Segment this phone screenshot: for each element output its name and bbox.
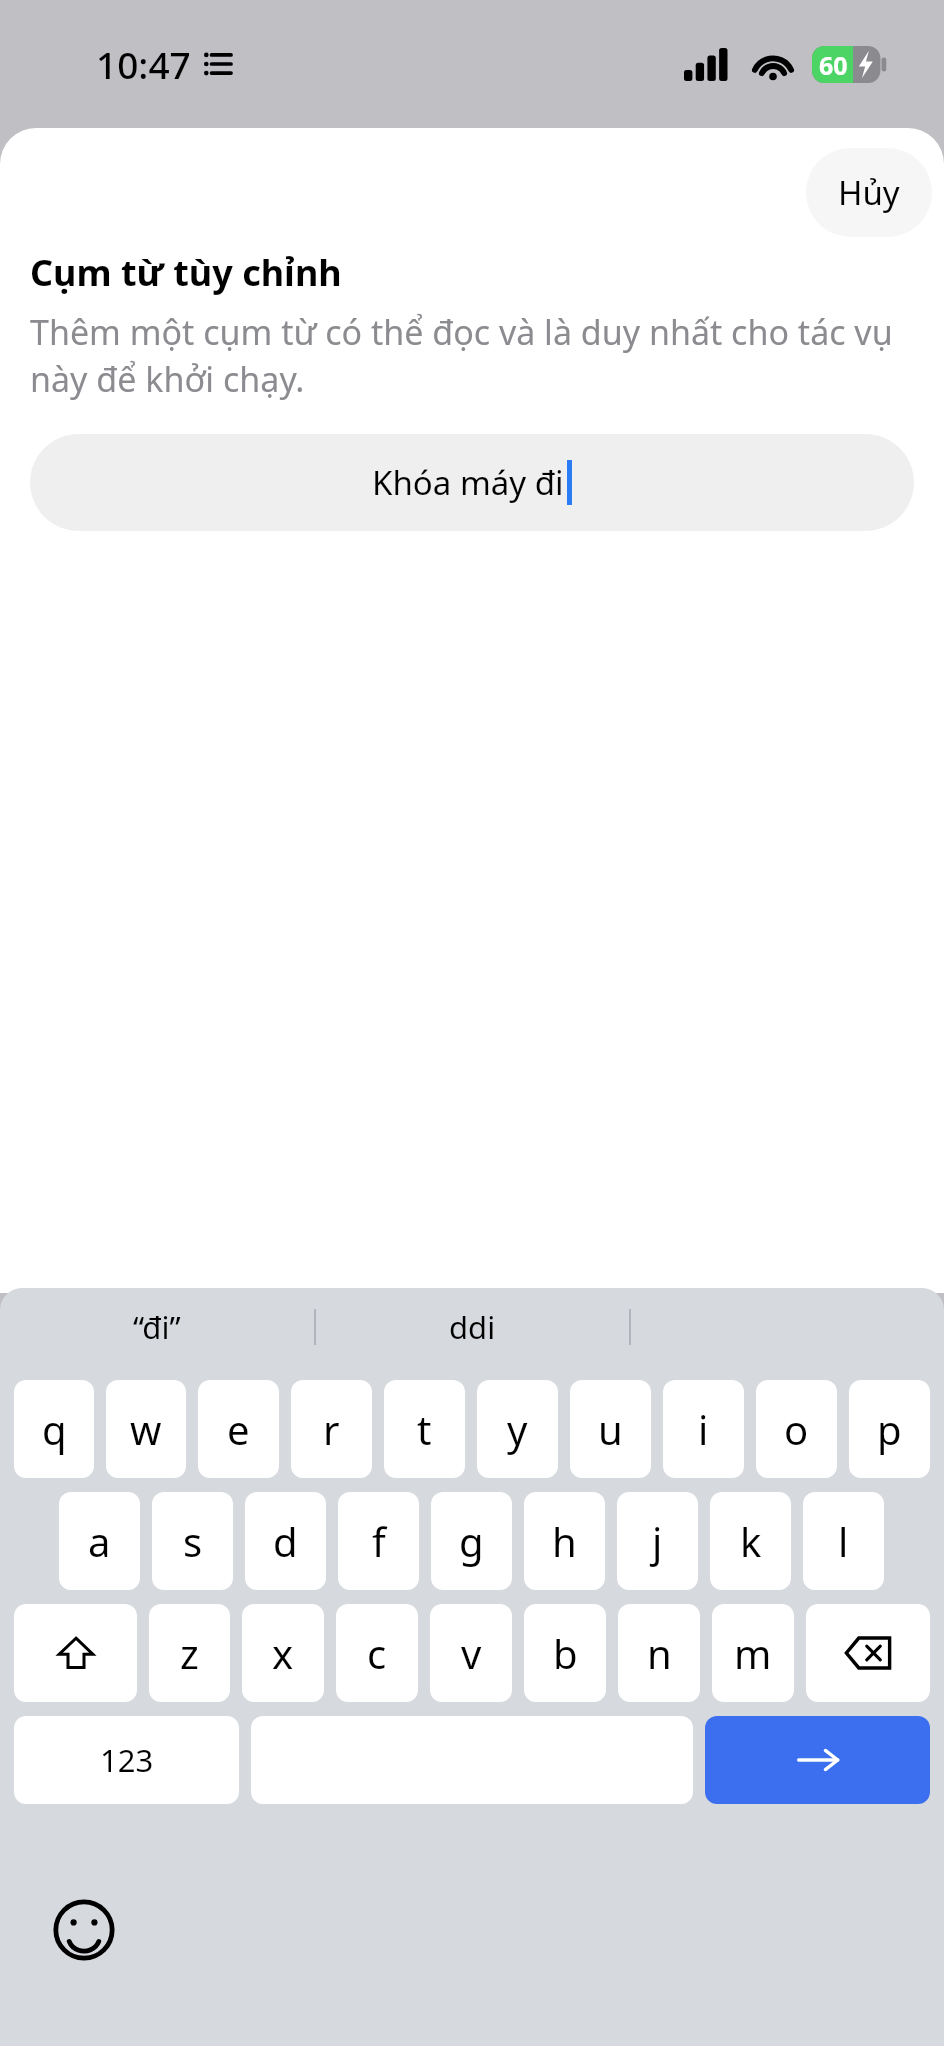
- button[interactable]: m: [712, 1604, 794, 1702]
- button[interactable]: j: [617, 1492, 698, 1590]
- button[interactable]: b: [524, 1604, 606, 1702]
- button[interactable]: f: [338, 1492, 419, 1590]
- staticText: e: [227, 1402, 250, 1456]
- staticText: Hủy: [838, 170, 900, 215]
- staticText: k: [740, 1514, 762, 1568]
- button[interactable]: g: [431, 1492, 512, 1590]
- button[interactable]: a: [59, 1492, 140, 1590]
- staticText: b: [553, 1626, 578, 1680]
- button[interactable]: s: [152, 1492, 233, 1590]
- staticText: Khóa máy đi: [372, 460, 564, 505]
- button[interactable]: x: [242, 1604, 324, 1702]
- button[interactable]: t: [384, 1380, 465, 1478]
- button[interactable]: h: [524, 1492, 605, 1590]
- button[interactable]: d: [245, 1492, 326, 1590]
- staticText: w: [130, 1402, 162, 1456]
- staticText: 60: [819, 48, 848, 82]
- button[interactable]: Return: [705, 1716, 930, 1804]
- button[interactable]: Backspace: [806, 1604, 930, 1702]
- button[interactable]: 123: [14, 1716, 239, 1804]
- button[interactable]: y: [477, 1380, 558, 1478]
- staticText: h: [552, 1514, 577, 1568]
- staticText: f: [372, 1514, 386, 1568]
- button[interactable]: Hủy: [806, 148, 932, 237]
- staticText: s: [183, 1514, 203, 1568]
- staticText: Cụm từ tùy chỉnh: [30, 248, 342, 297]
- button[interactable]: Shift: [14, 1604, 137, 1702]
- button[interactable]: “đi”: [0, 1288, 314, 1366]
- button[interactable]: p: [849, 1380, 930, 1478]
- staticText: a: [88, 1514, 111, 1568]
- staticText: m: [734, 1626, 772, 1680]
- staticText: c: [367, 1626, 387, 1680]
- button[interactable]: r: [291, 1380, 372, 1478]
- staticText: q: [42, 1402, 67, 1456]
- button[interactable]: u: [570, 1380, 651, 1478]
- staticText: ddi: [449, 1306, 496, 1348]
- button[interactable]: o: [756, 1380, 837, 1478]
- button[interactable]: q: [14, 1380, 94, 1478]
- staticText: Thêm một cụm từ có thể đọc và là duy nhấ…: [30, 309, 914, 402]
- staticText: g: [459, 1514, 484, 1568]
- button[interactable]: ddi: [316, 1288, 629, 1366]
- staticText: u: [598, 1402, 623, 1456]
- button[interactable]: k: [710, 1492, 791, 1590]
- staticText: y: [507, 1402, 528, 1456]
- staticText: d: [273, 1514, 298, 1568]
- button[interactable]: w: [106, 1380, 186, 1478]
- staticText: i: [698, 1402, 709, 1456]
- button[interactable]: v: [430, 1604, 512, 1702]
- staticText: j: [652, 1514, 663, 1568]
- staticText: 10:47: [96, 39, 191, 89]
- staticText: 123: [100, 1739, 154, 1781]
- staticText: “đi”: [133, 1306, 181, 1348]
- staticText: r: [323, 1402, 340, 1456]
- staticText: x: [272, 1626, 294, 1680]
- staticText: v: [461, 1626, 482, 1680]
- staticText: n: [647, 1626, 672, 1680]
- button[interactable]: Khóa máy đi: [30, 434, 914, 531]
- staticText: p: [877, 1402, 902, 1456]
- button[interactable]: c: [336, 1604, 418, 1702]
- staticText: l: [838, 1514, 849, 1568]
- button[interactable]: z: [149, 1604, 230, 1702]
- button[interactable]: Emoji: [52, 1898, 116, 1962]
- staticText: t: [417, 1402, 432, 1456]
- button[interactable]: i: [663, 1380, 744, 1478]
- button[interactable]: l: [803, 1492, 884, 1590]
- staticText: z: [180, 1626, 199, 1680]
- staticText: o: [784, 1402, 809, 1456]
- button[interactable]: n: [618, 1604, 700, 1702]
- button[interactable]: e: [198, 1380, 279, 1478]
